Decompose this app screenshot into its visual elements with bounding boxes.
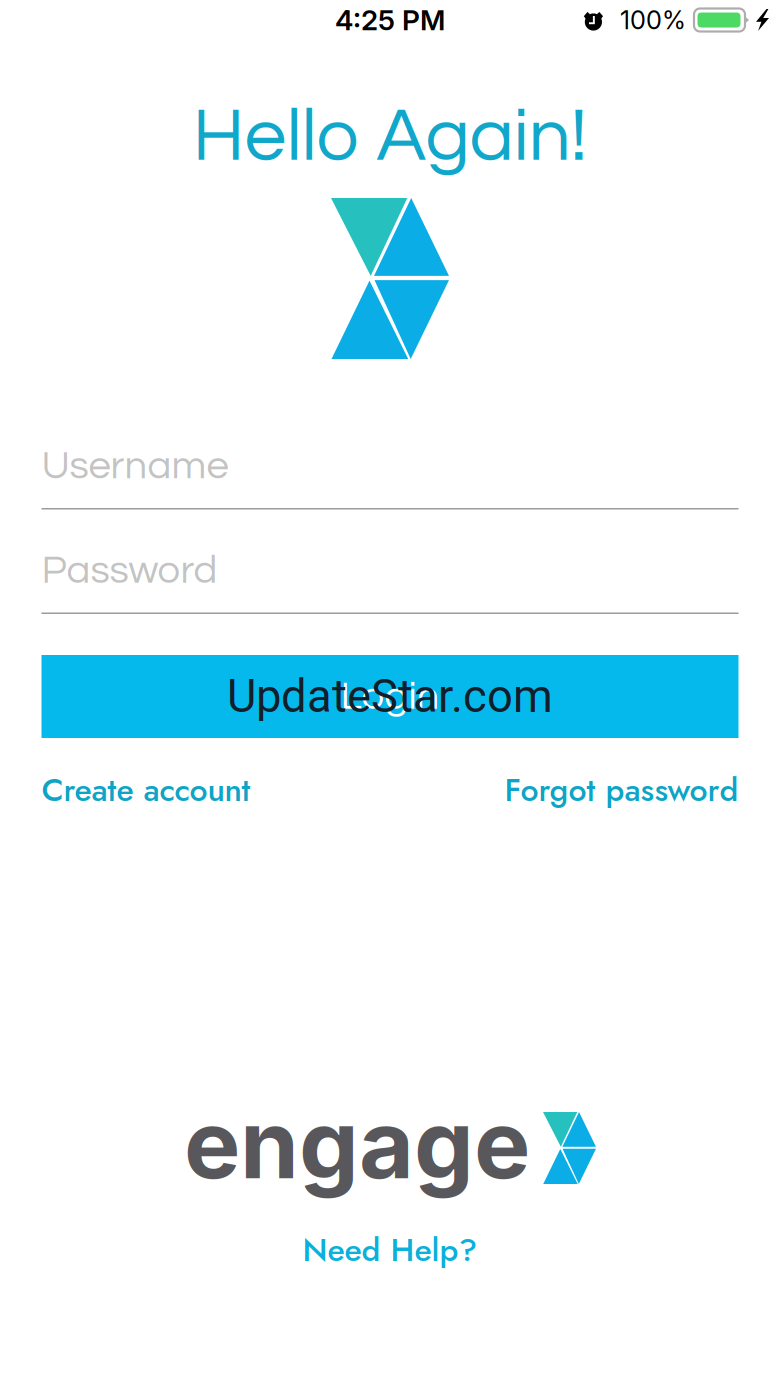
button[interactable]: Need Help? <box>302 1231 477 1269</box>
staticText: Login <box>340 676 439 717</box>
button[interactable]: Login <box>41 655 738 738</box>
staticText: Hello Again! <box>192 98 587 175</box>
button[interactable]: Forgot password <box>504 770 738 810</box>
staticText: Need Help? <box>302 1227 477 1273</box>
button[interactable]: Password <box>41 551 738 614</box>
button[interactable]: Username <box>41 447 738 509</box>
staticText: Forgot password <box>504 767 738 813</box>
staticText: engage <box>184 1086 530 1201</box>
staticText: 100% <box>620 5 686 35</box>
button[interactable]: Create account <box>41 770 250 810</box>
staticText: Password <box>41 550 217 591</box>
staticText: Username <box>41 445 228 487</box>
staticText: 4:25 PM <box>335 3 445 37</box>
staticText: Create account <box>41 767 250 813</box>
staticText: UpdateStar.com <box>227 670 553 723</box>
